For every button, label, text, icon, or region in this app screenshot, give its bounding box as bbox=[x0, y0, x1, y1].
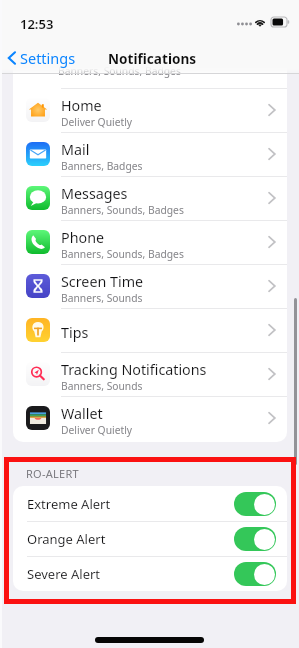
button[interactable]: Wallet bbox=[13, 396, 287, 440]
staticText: RO-ALERT bbox=[26, 466, 79, 481]
button[interactable]: Toggle alert bbox=[234, 527, 276, 551]
staticText: Banners, Sounds, Badges bbox=[61, 203, 184, 217]
staticText: Extreme Alert bbox=[27, 495, 234, 513]
button[interactable]: Settings bbox=[7, 42, 76, 74]
staticText: Orange Alert bbox=[27, 530, 234, 548]
staticText: Banners, Sounds, Badges bbox=[61, 247, 184, 261]
staticText: Settings bbox=[20, 48, 76, 68]
button[interactable]: Toggle alert bbox=[234, 562, 276, 586]
staticText: 12:53 bbox=[20, 15, 54, 33]
button[interactable]: Messages bbox=[13, 176, 287, 220]
button[interactable]: Orange Alert bbox=[13, 521, 287, 556]
button[interactable]: Severe Alert bbox=[13, 556, 287, 591]
staticText: Banners, Badges bbox=[61, 159, 143, 173]
button[interactable]: Tracking Notifications bbox=[13, 352, 287, 396]
staticText: Banners, Sounds bbox=[61, 291, 143, 305]
staticText: Tips bbox=[61, 323, 89, 342]
staticText: Banners, Sounds bbox=[61, 379, 143, 393]
button[interactable]: Home bbox=[13, 88, 287, 132]
staticText: Mail bbox=[61, 140, 90, 159]
staticText: Tracking Notifications bbox=[61, 360, 207, 379]
staticText: Home bbox=[61, 96, 102, 115]
button[interactable]: Mail bbox=[13, 132, 287, 176]
staticText: Severe Alert bbox=[27, 565, 234, 583]
staticText: Deliver Quietly bbox=[61, 115, 133, 129]
staticText: Deliver Quietly bbox=[61, 423, 133, 437]
button[interactable]: Tips bbox=[13, 308, 287, 352]
staticText: Notifications bbox=[108, 49, 197, 68]
button[interactable]: Screen Time bbox=[13, 264, 287, 308]
button[interactable]: Extreme Alert bbox=[13, 486, 287, 521]
staticText: Banners, Sounds, Badges bbox=[58, 64, 181, 78]
staticText: Messages bbox=[61, 184, 128, 203]
button[interactable]: Phone bbox=[13, 220, 287, 264]
staticText: Screen Time bbox=[61, 272, 144, 291]
button[interactable]: Toggle alert bbox=[234, 492, 276, 516]
staticText: Wallet bbox=[61, 404, 103, 423]
staticText: Phone bbox=[61, 228, 105, 247]
